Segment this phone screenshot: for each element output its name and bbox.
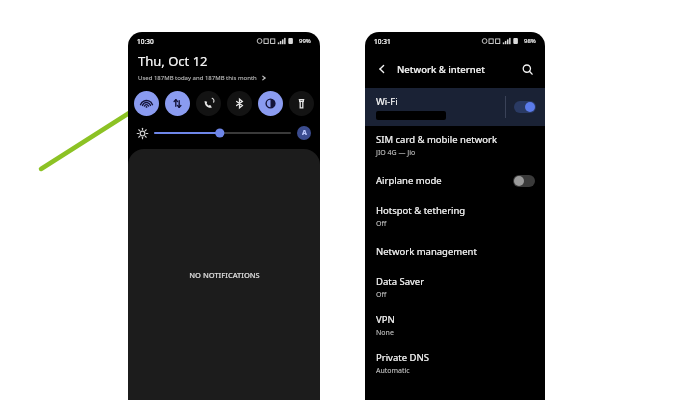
button[interactable]: Auto brightness xyxy=(297,126,311,140)
staticText: VPN xyxy=(376,313,395,326)
staticText: A xyxy=(302,128,307,138)
staticText: Wi-Fi xyxy=(376,95,398,108)
button[interactable]: VPN xyxy=(365,306,545,344)
staticText: SIM card & mobile network xyxy=(376,133,497,146)
button[interactable]: Network management xyxy=(365,235,545,268)
button[interactable]: Back xyxy=(374,61,390,77)
button[interactable]: Dark mode xyxy=(258,91,283,116)
staticText: Data Saver xyxy=(376,275,425,288)
button[interactable]: Flashlight xyxy=(289,91,314,116)
button[interactable]: Hotspot & tethering xyxy=(365,197,545,235)
button[interactable]: Wi-Fi xyxy=(134,91,159,116)
staticText: Thu, Oct 12 xyxy=(138,52,208,70)
staticText: Off xyxy=(376,219,387,229)
button[interactable]: Off xyxy=(513,175,535,187)
staticText: 99% xyxy=(299,37,311,45)
button[interactable]: On xyxy=(514,101,536,113)
button[interactable]: Wi-Fi xyxy=(365,88,545,126)
button[interactable]: Call xyxy=(196,91,221,116)
button[interactable]: SIM card & mobile network xyxy=(365,126,545,164)
staticText: Network & internet xyxy=(397,63,485,76)
staticText: 98% xyxy=(524,37,536,45)
staticText: Used 187MB today and 187MB this month xyxy=(138,74,257,82)
button[interactable]: Private DNS xyxy=(365,344,545,382)
button[interactable]: Airplane mode xyxy=(365,164,545,197)
staticText: 10:30 xyxy=(137,37,154,46)
button[interactable]: Used 187MB today and 187MB this month xyxy=(138,74,267,82)
staticText: Network management xyxy=(376,245,477,258)
staticText: Airplane mode xyxy=(376,174,442,187)
staticText: Hotspot & tethering xyxy=(376,204,466,217)
staticText: 10:31 xyxy=(374,37,391,46)
staticText: Automatic xyxy=(376,366,410,376)
staticText: NO NOTIFICATIONS xyxy=(189,270,260,280)
staticText: Private DNS xyxy=(376,351,429,364)
staticText: JIO 4G — Jio xyxy=(376,148,416,158)
button[interactable]: Mobile data xyxy=(165,91,190,116)
staticText: None xyxy=(376,328,394,338)
button[interactable]: Search xyxy=(518,60,536,78)
button[interactable]: Data Saver xyxy=(365,268,545,306)
staticText: Off xyxy=(376,290,387,300)
button[interactable]: Bluetooth xyxy=(227,91,252,116)
